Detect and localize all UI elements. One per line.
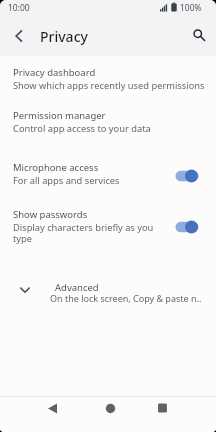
button[interactable]: Show passwords — [0, 204, 216, 252]
staticText: Microphone access — [13, 161, 99, 174]
staticText: 10:00 — [8, 2, 30, 14]
button[interactable] — [104, 402, 117, 415]
button[interactable]: Permission manager — [0, 103, 216, 139]
staticText: Advanced — [55, 281, 99, 294]
button[interactable]: Advanced — [0, 273, 216, 309]
staticText: Show which apps recently used permission… — [13, 79, 205, 92]
staticText: Privacy dashboard — [13, 66, 96, 79]
button[interactable] — [190, 26, 208, 44]
staticText: For all apps and services — [13, 174, 120, 187]
button[interactable] — [156, 402, 169, 415]
button[interactable]: Privacy dashboard — [0, 60, 216, 96]
button[interactable] — [12, 28, 26, 44]
staticText: 100% — [180, 2, 202, 14]
button[interactable]: Microphone access — [0, 155, 216, 197]
button[interactable] — [46, 402, 59, 415]
staticText: Control app access to your data — [13, 122, 151, 135]
staticText: On the lock screen, Copy & paste n.. — [50, 292, 202, 304]
staticText: Privacy — [40, 27, 88, 46]
staticText: Permission manager — [13, 109, 106, 122]
staticText: Show passwords — [13, 208, 88, 221]
staticText: Display characters briefly as you type — [13, 221, 154, 245]
